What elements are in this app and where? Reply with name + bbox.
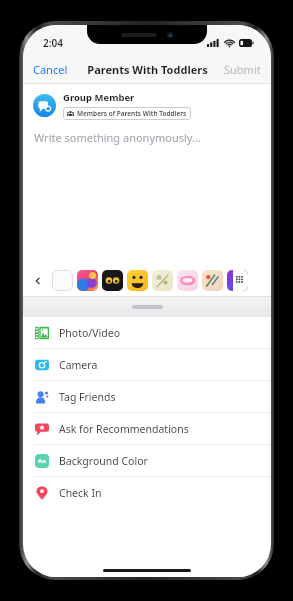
- staticText: Group Member: [63, 91, 135, 104]
- button[interactable]: Colorful sticker pack: [77, 270, 98, 291]
- staticText: Aa: [38, 457, 46, 465]
- button[interactable]: Ask for Recommendations: [23, 413, 271, 444]
- staticText: Background Color: [59, 454, 148, 468]
- button[interactable]: Eyes sticker pack: [102, 270, 123, 291]
- staticText: Parents With Toddlers: [87, 62, 208, 77]
- button[interactable]: Pastel sticker pack: [177, 270, 198, 291]
- button[interactable]: Tag Friends: [23, 381, 271, 412]
- staticText: Tag Friends: [59, 390, 116, 404]
- staticText: Write something anonymously...: [34, 130, 201, 145]
- button[interactable]: Art sticker pack: [202, 270, 223, 291]
- staticText: Check In: [59, 486, 102, 500]
- button[interactable]: Aa: [23, 445, 271, 476]
- button[interactable]: All stickers: [227, 270, 248, 291]
- button[interactable]: Nature sticker pack: [152, 270, 173, 291]
- button[interactable]: Back: [27, 270, 48, 291]
- staticText: Photo/Video: [59, 326, 120, 340]
- staticText: Ask for Recommendations: [59, 422, 189, 436]
- staticText: Camera: [59, 358, 98, 372]
- button[interactable]: Check In: [23, 477, 271, 508]
- button[interactable]: Submit: [214, 55, 271, 83]
- staticText: 2:04: [43, 36, 63, 50]
- button[interactable]: Camera: [23, 349, 271, 380]
- button[interactable]: Blank sticker: [52, 270, 73, 291]
- button[interactable]: Cancel: [23, 55, 78, 83]
- staticText: Members of Parents With Toddlers: [77, 109, 187, 118]
- button[interactable]: Smiley sticker pack: [127, 270, 148, 291]
- staticText: Submit: [224, 62, 261, 77]
- button[interactable]: Members of Parents With Toddlers: [63, 107, 191, 120]
- staticText: Cancel: [33, 62, 68, 77]
- button[interactable]: Photo/Video: [23, 317, 271, 348]
